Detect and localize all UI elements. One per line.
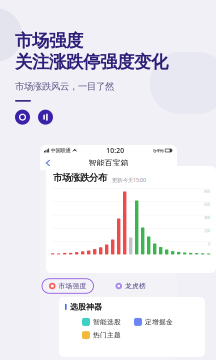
staticText: 600	[204, 202, 210, 207]
staticText: 400	[204, 215, 210, 220]
staticText: 关注涨跌停强度变化	[15, 51, 168, 73]
button[interactable]: 市场强度	[42, 279, 93, 293]
staticText: 0	[208, 241, 210, 247]
button[interactable]: 智能选股	[82, 318, 134, 326]
staticText: 智能百宝箱	[88, 158, 128, 168]
staticText: 200	[204, 228, 210, 233]
button[interactable]: 定增掘金	[134, 318, 186, 326]
staticText: 热门主题	[93, 331, 121, 339]
staticText: 定增掘金	[145, 318, 173, 326]
staticText: 市场强度	[15, 30, 83, 51]
staticText: 市场涨跌风云，一目了然	[15, 81, 114, 92]
staticText: 10:20	[106, 146, 124, 155]
staticText: 选股神器	[70, 302, 102, 312]
staticText: 800	[204, 188, 210, 194]
staticText: 市场涨跌分布	[53, 172, 107, 183]
staticText: 中国联通	[51, 147, 71, 154]
staticText: 智能选股	[93, 318, 121, 326]
staticText: 龙虎榜	[125, 282, 146, 290]
button[interactable]: 龙虎榜	[108, 279, 153, 293]
staticText: 64%	[153, 147, 163, 154]
staticText: 市场强度	[58, 282, 86, 290]
button[interactable]: Back	[40, 156, 56, 170]
button[interactable]: 热门主题	[82, 331, 134, 339]
staticText: 更新·今天15:00	[112, 176, 146, 183]
